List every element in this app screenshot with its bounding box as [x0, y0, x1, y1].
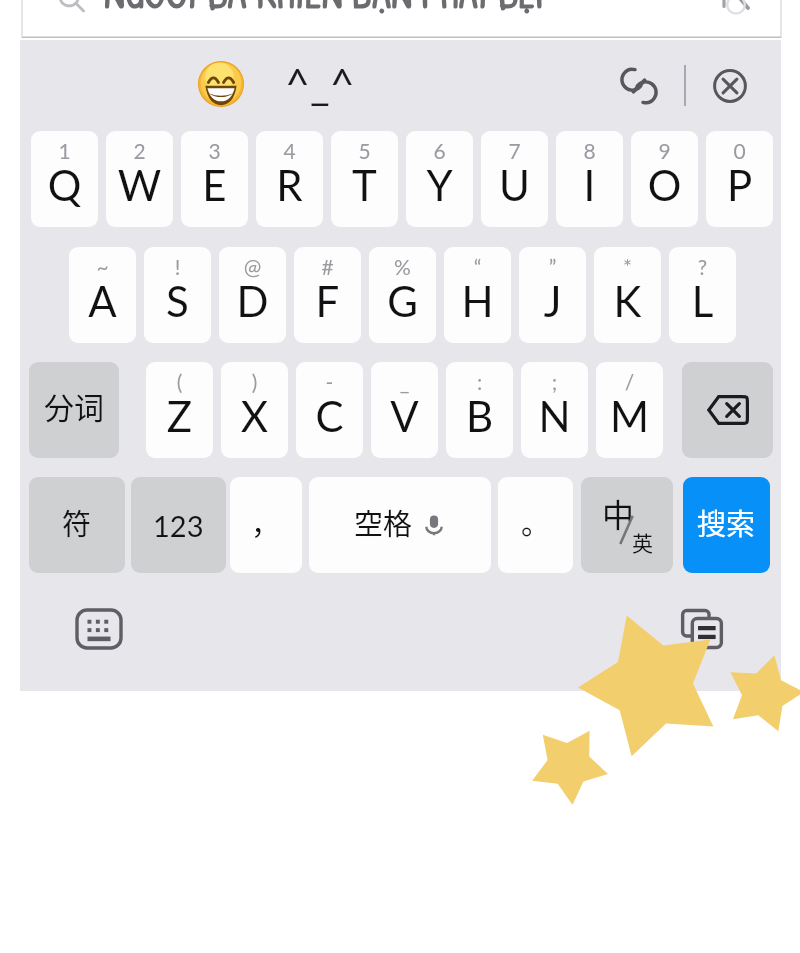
staticText: 英 — [632, 527, 653, 557]
staticText: 符 — [62, 501, 92, 543]
button[interactable]: 6 — [406, 131, 473, 227]
staticText: # — [294, 254, 361, 279]
staticText: 7 — [481, 138, 548, 163]
staticText: N — [521, 391, 588, 441]
staticText: T — [331, 160, 398, 210]
staticText: P — [706, 160, 773, 210]
button[interactable]: Close keyboard — [704, 60, 756, 112]
staticText: Y — [406, 160, 473, 210]
staticText: L — [669, 276, 736, 326]
button[interactable]: 分词 — [29, 362, 119, 458]
button[interactable]: 7 — [481, 131, 548, 227]
staticText: Z — [146, 391, 213, 441]
staticText: D — [219, 276, 286, 326]
button[interactable]: ~ — [69, 247, 136, 343]
staticText: 6 — [406, 138, 473, 163]
staticText: I — [556, 160, 623, 210]
staticText: U — [481, 160, 548, 210]
button[interactable]: / — [596, 362, 663, 458]
button[interactable]: ? — [669, 247, 736, 343]
staticText: K — [594, 276, 661, 326]
staticText: 5 — [331, 138, 398, 163]
staticText: ! — [144, 254, 211, 279]
button[interactable]: - — [296, 362, 363, 458]
staticText: ” — [519, 254, 586, 279]
button[interactable]: ) — [221, 362, 288, 458]
staticText: A — [69, 276, 136, 326]
staticText: 搜索 — [697, 501, 756, 543]
button[interactable]: Backspace — [682, 362, 773, 458]
staticText: 1 — [31, 138, 98, 163]
button[interactable]: 9 — [631, 131, 698, 227]
button[interactable]: NGƯỜI ĐÀ KHIẾN BẠN PHẢI ĐẸP — [22, 0, 781, 38]
button[interactable]: 5 — [331, 131, 398, 227]
staticText: O — [631, 160, 698, 210]
staticText: 中 — [602, 490, 635, 536]
button[interactable]: ; — [521, 362, 588, 458]
staticText: NGƯỜI ĐÀ KHIẾN BẠN PHẢI ĐẸP — [104, 0, 555, 20]
staticText: X — [221, 391, 288, 441]
button[interactable]: ， — [230, 477, 302, 573]
button[interactable]: 8 — [556, 131, 623, 227]
button[interactable]: ! — [144, 247, 211, 343]
staticText: F — [294, 276, 361, 326]
staticText: 。 — [521, 501, 551, 543]
staticText: “ — [444, 254, 511, 279]
button[interactable]: # — [294, 247, 361, 343]
button[interactable]: 。 — [498, 477, 573, 573]
button[interactable]: 0 — [706, 131, 773, 227]
staticText: - — [296, 369, 363, 394]
staticText: 2 — [106, 138, 173, 163]
staticText: ( — [146, 369, 213, 394]
staticText: 4 — [256, 138, 323, 163]
button[interactable]: 3 — [181, 131, 248, 227]
staticText: 3 — [181, 138, 248, 163]
button[interactable]: Insert link — [613, 60, 665, 112]
staticText: ， — [251, 501, 281, 543]
staticText: / — [596, 369, 663, 394]
staticText: ^_^ — [285, 58, 355, 110]
staticText: @ — [219, 254, 286, 279]
staticText: 123 — [153, 508, 204, 543]
button[interactable]: “ — [444, 247, 511, 343]
button[interactable]: Clipboard — [671, 598, 733, 660]
staticText: ; — [521, 369, 588, 394]
button[interactable]: 1 — [31, 131, 98, 227]
button[interactable]: ” — [519, 247, 586, 343]
button[interactable]: 符 — [29, 477, 125, 573]
button[interactable]: 4 — [256, 131, 323, 227]
button[interactable]: _ — [371, 362, 438, 458]
button[interactable]: * — [594, 247, 661, 343]
staticText: H — [444, 276, 511, 326]
button[interactable]: Search tools — [716, 0, 756, 24]
button[interactable]: : — [446, 362, 513, 458]
staticText: * — [594, 254, 661, 279]
button[interactable]: 中 — [581, 477, 673, 573]
staticText: 空格 — [354, 501, 413, 543]
staticText: R — [256, 160, 323, 210]
button[interactable] — [198, 61, 244, 107]
staticText: C — [296, 391, 363, 441]
staticText: Q — [31, 160, 98, 210]
staticText: S — [144, 276, 211, 326]
staticText: W — [106, 160, 173, 210]
staticText: ) — [221, 369, 288, 394]
button[interactable]: Switch keyboard layout — [68, 598, 130, 660]
staticText: _ — [371, 369, 438, 394]
button[interactable]: 空格 — [309, 477, 491, 573]
button[interactable]: % — [369, 247, 436, 343]
button[interactable]: ( — [146, 362, 213, 458]
staticText: V — [371, 391, 438, 441]
staticText: 8 — [556, 138, 623, 163]
staticText: 0 — [706, 138, 773, 163]
button[interactable]: ^_^ — [268, 52, 372, 116]
staticText: J — [519, 276, 586, 326]
staticText: G — [369, 276, 436, 326]
button[interactable]: 123 — [131, 477, 226, 573]
button[interactable]: 2 — [106, 131, 173, 227]
staticText: E — [181, 160, 248, 210]
button[interactable]: @ — [219, 247, 286, 343]
button[interactable]: 搜索 — [683, 477, 770, 573]
staticText: 分词 — [44, 384, 104, 427]
staticText: % — [369, 254, 436, 279]
